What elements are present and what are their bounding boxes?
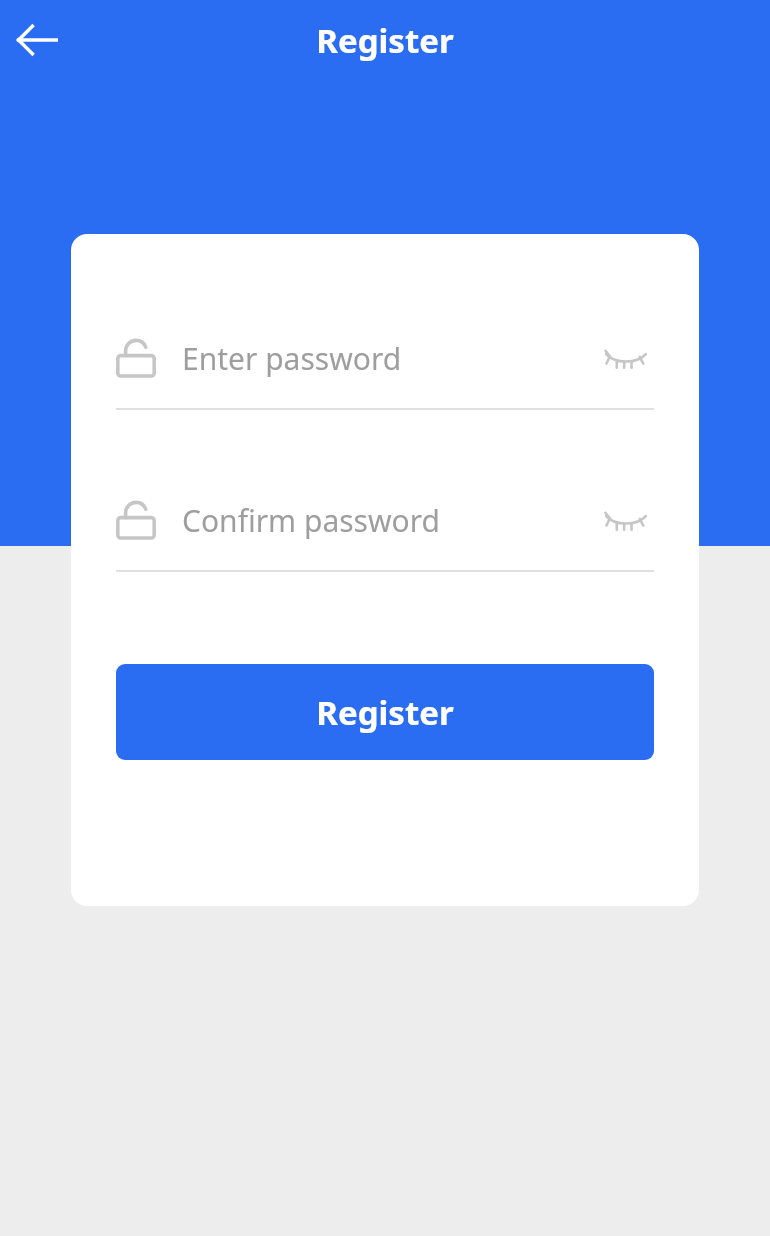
button[interactable]: Show Enter password bbox=[598, 330, 654, 386]
staticText: Enter password bbox=[182, 338, 402, 379]
button[interactable]: Show Confirm password bbox=[598, 492, 654, 548]
staticText: Register bbox=[316, 18, 454, 63]
button[interactable]: Enter password bbox=[116, 330, 654, 410]
button[interactable]: Register bbox=[116, 664, 654, 760]
staticText: Confirm password bbox=[182, 500, 440, 541]
button[interactable]: Confirm password bbox=[116, 492, 654, 572]
button[interactable]: Back bbox=[6, 9, 68, 71]
staticText: Register bbox=[316, 690, 454, 735]
